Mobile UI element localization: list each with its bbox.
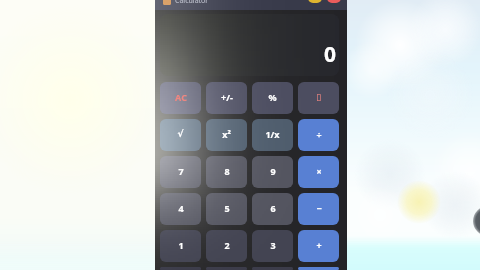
staticText: 9 [270,165,276,177]
staticText: Calculator [175,0,209,6]
button[interactable]: × [298,156,339,188]
button[interactable]: − [298,193,339,225]
button[interactable]: % [252,82,293,114]
staticText: + [316,239,322,251]
button[interactable]: 5 [206,193,247,225]
button[interactable]: AC [160,82,201,114]
staticText: − [316,202,322,214]
button[interactable]: 9 [252,156,293,188]
button[interactable]: x² [206,119,247,151]
button[interactable]: +/- [206,82,247,114]
button[interactable]: 3 [252,230,293,262]
button[interactable]: ÷ [298,119,339,151]
staticText: 3 [270,239,276,251]
staticText: AC [175,91,187,103]
staticText: 4 [178,202,184,214]
staticText: +/- [221,91,233,103]
button[interactable]: Close window [327,0,341,3]
button[interactable]: 4 [160,193,201,225]
button[interactable]: 6 [252,193,293,225]
button[interactable]: + [298,230,339,262]
staticText: x² [222,128,231,140]
staticText: ÷ [316,128,322,140]
staticText: 1/x [265,128,280,140]
button[interactable]: Minimize window [308,0,322,3]
staticText: × [316,165,322,177]
button[interactable]: = [298,267,339,270]
button[interactable]: 1 [160,230,201,262]
staticText: 6 [270,202,276,214]
button[interactable]: ▯ [298,82,339,114]
button[interactable]: 8 [206,156,247,188]
staticText: ▯ [316,92,321,102]
staticText: 1 [178,239,184,251]
staticText: 7 [178,165,184,177]
button[interactable]: 7 [160,156,201,188]
button[interactable]: √ [160,119,201,151]
staticText: % [268,91,277,103]
button[interactable]: 1/x [252,119,293,151]
staticText: √ [177,129,184,139]
staticText: 2 [224,239,230,251]
staticText: 8 [224,165,230,177]
staticText: 5 [224,202,230,214]
staticText: 0 [324,40,337,69]
button[interactable]: 2 [206,230,247,262]
